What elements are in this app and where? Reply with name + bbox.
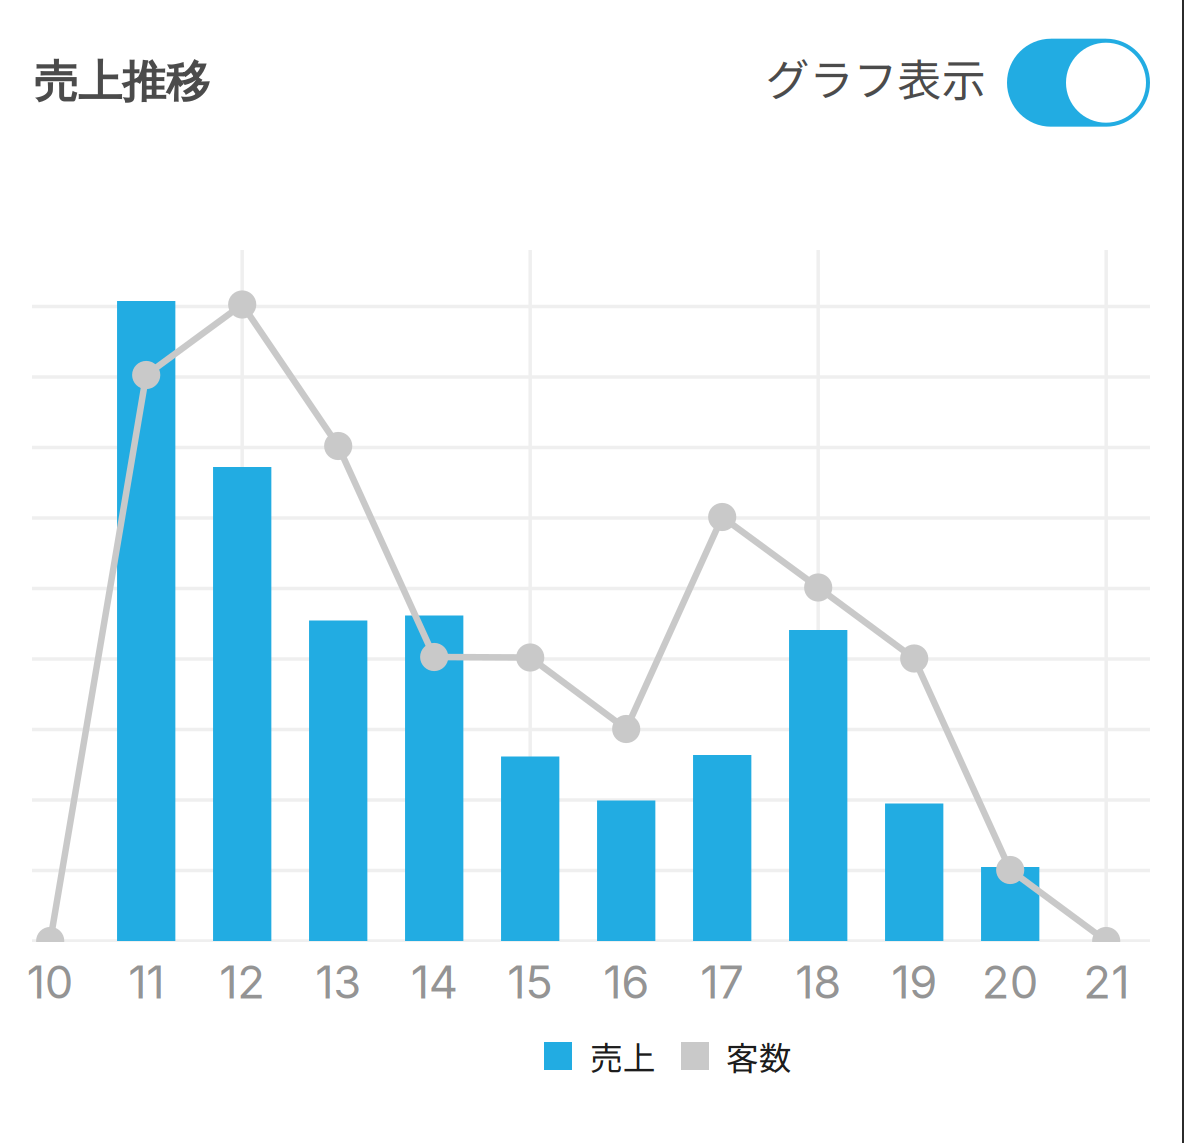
staticText: 21 — [1083, 955, 1129, 1009]
staticText: 12 — [219, 955, 265, 1009]
staticText: 13 — [315, 955, 361, 1009]
staticText: 19 — [891, 955, 937, 1009]
staticText: 14 — [411, 955, 458, 1009]
staticText: 売上推移 — [34, 54, 210, 110]
staticText: 17 — [700, 955, 744, 1009]
staticText: 15 — [507, 955, 553, 1009]
staticText: 売上 — [590, 1032, 656, 1080]
staticText: 10 — [27, 955, 74, 1009]
staticText: 20 — [982, 955, 1039, 1009]
staticText: 18 — [795, 955, 841, 1009]
staticText: 11 — [128, 955, 164, 1009]
staticText: 16 — [603, 955, 649, 1009]
staticText: グラフ表示 — [765, 45, 985, 109]
staticText: 客数 — [726, 1032, 792, 1080]
button[interactable]: グラフ表示 — [1007, 39, 1150, 127]
